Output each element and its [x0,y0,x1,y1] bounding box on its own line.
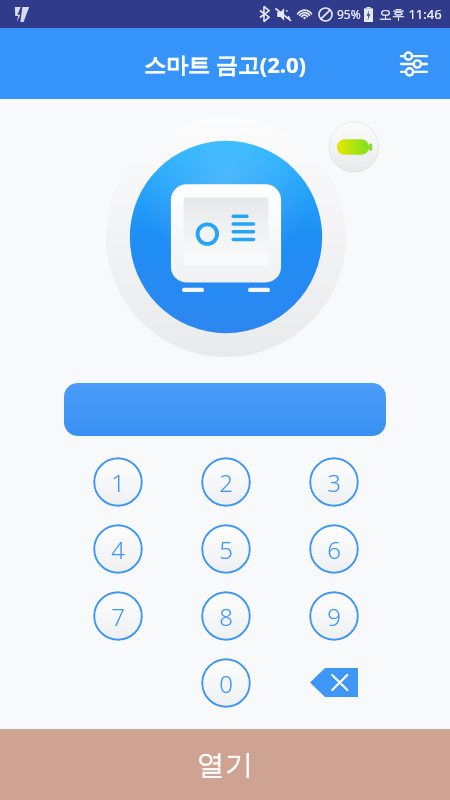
button[interactable]: Backspace [308,664,360,700]
button[interactable]: 2 [201,457,251,507]
button[interactable]: 9 [309,591,359,641]
button[interactable]: 3 [309,457,359,507]
staticText: 스마트 금고(2.0) [144,49,306,79]
staticText: 1 [111,466,125,499]
button[interactable]: 7 [93,591,143,641]
staticText: 5 [219,533,233,566]
staticText: 6 [327,533,341,566]
button[interactable]: 5 [201,524,251,574]
staticText: 3 [327,466,341,499]
button[interactable] [64,383,386,436]
button[interactable]: 열기 [0,729,450,800]
staticText: 8 [219,600,233,633]
staticText: 0 [219,667,233,700]
button[interactable]: Settings [392,42,436,86]
button[interactable]: 6 [309,524,359,574]
button[interactable]: 0 [201,658,251,708]
button[interactable]: 8 [201,591,251,641]
staticText: 오후 11:46 [379,5,442,23]
staticText: 95% [337,6,361,22]
staticText: 2 [219,466,233,499]
staticText: 7 [111,600,125,633]
button[interactable]: 1 [93,457,143,507]
staticText: 9 [327,600,341,633]
button[interactable]: Battery status [328,121,380,173]
staticText: 4 [111,533,125,566]
button[interactable]: 4 [93,524,143,574]
staticText: 열기 [197,747,253,782]
